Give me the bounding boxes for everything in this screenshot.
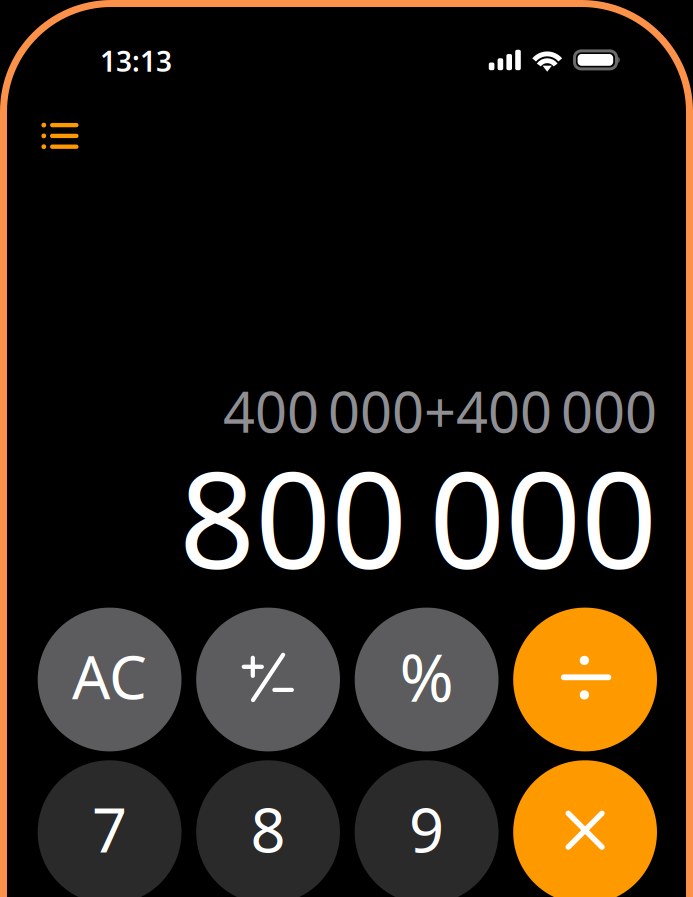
button[interactable]: History: [31, 112, 87, 158]
button[interactable]: 7: [38, 760, 181, 897]
button[interactable]: 9: [355, 760, 498, 897]
staticText: AC: [72, 636, 147, 716]
staticText: 8: [251, 788, 286, 869]
staticText: 7: [92, 788, 127, 869]
button[interactable]: %: [355, 608, 498, 751]
button[interactable]: 8: [196, 760, 340, 897]
staticText: 800 000: [179, 428, 657, 606]
button[interactable]: AC: [38, 608, 181, 751]
button[interactable]: Multiply: [513, 760, 657, 897]
button[interactable]: Divide: [513, 608, 657, 751]
staticText: 9: [409, 788, 444, 869]
staticText: 13:13: [100, 42, 172, 80]
staticText: 400 000+400 000: [223, 374, 657, 448]
button[interactable]: Plus minus: [196, 608, 340, 751]
staticText: %: [400, 633, 454, 720]
